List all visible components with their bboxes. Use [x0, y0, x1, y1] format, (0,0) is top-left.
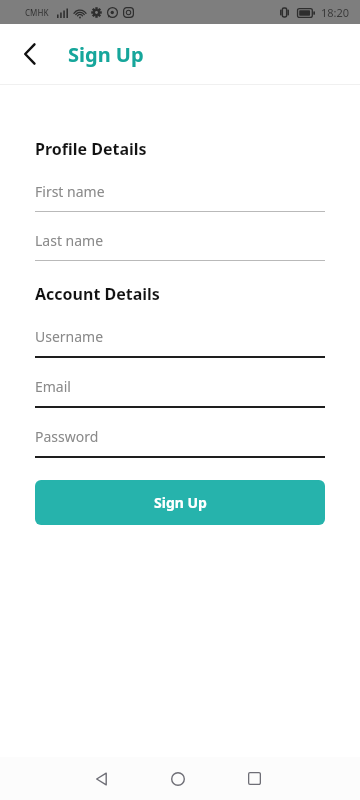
- button[interactable]: Password: [35, 427, 325, 458]
- staticText: 18:20: [321, 5, 350, 20]
- button[interactable]: Email: [35, 377, 325, 408]
- staticText: CMHK: [25, 7, 49, 18]
- button[interactable]: Recent apps: [228, 757, 280, 800]
- staticText: Sign Up: [68, 41, 144, 68]
- staticText: Last name: [35, 231, 104, 250]
- staticText: Email: [35, 377, 71, 396]
- button[interactable]: Home: [152, 757, 204, 800]
- staticText: First name: [35, 182, 105, 201]
- staticText: Sign Up: [154, 493, 207, 512]
- button[interactable]: Back: [8, 32, 52, 76]
- button[interactable]: First name: [35, 182, 325, 212]
- button[interactable]: Last name: [35, 231, 325, 261]
- staticText: Username: [35, 327, 104, 346]
- button[interactable]: Sign Up: [35, 480, 325, 525]
- button[interactable]: Username: [35, 327, 325, 358]
- staticText: Password: [35, 427, 99, 446]
- staticText: Account Details: [35, 283, 160, 305]
- button[interactable]: Back: [76, 757, 128, 800]
- staticText: Profile Details: [35, 138, 147, 160]
